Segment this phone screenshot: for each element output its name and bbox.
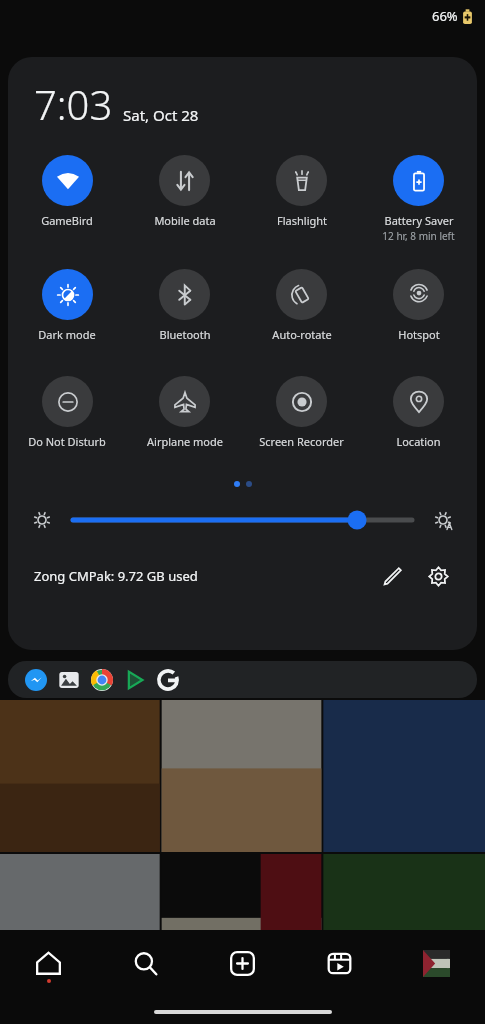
staticText: Dark mode bbox=[38, 327, 96, 342]
button[interactable]: Do Not Disturb bbox=[8, 374, 126, 451]
staticText: Bluetooth bbox=[159, 327, 211, 342]
button[interactable]: Messenger bbox=[25, 669, 47, 691]
button[interactable]: Mobile data bbox=[126, 153, 243, 230]
button[interactable]: Screen Recorder bbox=[243, 374, 360, 451]
button[interactable]: Home bbox=[0, 930, 97, 996]
button[interactable]: GameBird bbox=[8, 153, 126, 230]
button[interactable]: Settings bbox=[421, 559, 455, 593]
button[interactable]: Battery Saver bbox=[360, 153, 477, 245]
staticText: 66% bbox=[432, 7, 458, 25]
button[interactable]: Play Store bbox=[124, 669, 146, 691]
staticText: Auto-rotate bbox=[272, 327, 332, 342]
button[interactable]: Hotspot bbox=[360, 267, 477, 344]
staticText: Flashlight bbox=[277, 213, 327, 228]
staticText: Location bbox=[396, 434, 441, 449]
button[interactable]: Google bbox=[157, 669, 179, 691]
staticText: Sat, Oct 28 bbox=[123, 105, 199, 125]
button[interactable]: Location bbox=[360, 374, 477, 451]
button[interactable]: Search bbox=[97, 930, 194, 996]
button[interactable]: Edit tiles bbox=[375, 559, 409, 593]
staticText: Screen Recorder bbox=[259, 434, 344, 449]
staticText: Zong CMPak: 9.72 GB used bbox=[34, 567, 198, 585]
staticText: Airplane mode bbox=[147, 434, 223, 449]
staticText: Do Not Disturb bbox=[28, 434, 106, 449]
staticText: 7:03 bbox=[34, 77, 113, 131]
staticText: Mobile data bbox=[154, 213, 216, 228]
button[interactable]: Photos bbox=[58, 669, 80, 691]
button[interactable]: Create bbox=[194, 930, 291, 996]
button[interactable]: Chrome bbox=[91, 669, 113, 691]
button[interactable]: Reels bbox=[291, 930, 388, 996]
staticText: GameBird bbox=[41, 213, 93, 228]
staticText: Hotspot bbox=[398, 327, 440, 342]
button[interactable]: Dark mode bbox=[8, 267, 126, 344]
button[interactable]: Bluetooth bbox=[126, 267, 243, 344]
button[interactable]: Profile bbox=[388, 950, 485, 977]
staticText: 12 hr, 8 min left bbox=[382, 229, 455, 243]
staticText: Battery Saver bbox=[384, 213, 454, 228]
button[interactable]: Airplane mode bbox=[126, 374, 243, 451]
button[interactable]: Auto-rotate bbox=[243, 267, 360, 344]
button[interactable]: Flashlight bbox=[243, 153, 360, 230]
